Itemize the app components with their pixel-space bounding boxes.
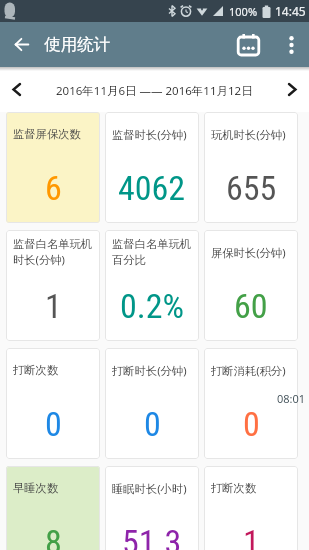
staticText: 监督时长(分钟)	[112, 127, 187, 142]
staticText: 打断时长(分钟)	[112, 363, 187, 378]
staticText: 51.3	[122, 522, 182, 550]
staticText: 1	[243, 522, 260, 550]
staticText: 14:45	[275, 3, 306, 19]
staticText: 100%	[229, 4, 258, 19]
staticText: 4062	[118, 168, 186, 208]
staticText: 0	[144, 404, 161, 444]
staticText: 睡眠时长(小时)	[112, 481, 187, 496]
staticText: 8	[45, 522, 62, 550]
staticText: 打断次数	[211, 481, 257, 495]
staticText: 监督屏保次数	[13, 127, 81, 141]
staticText: 打断消耗(积分)	[211, 363, 286, 378]
staticText: 6	[45, 168, 62, 208]
staticText: 60	[234, 286, 268, 326]
staticText: 监督白名单玩机 时长(分钟)	[13, 237, 93, 268]
staticText: 2016年11月6日 —— 2016年11月12日	[56, 83, 253, 99]
staticText: 08:01	[277, 391, 306, 406]
staticText: 打断次数	[13, 363, 59, 377]
staticText: 655	[226, 168, 277, 208]
staticText: 屏保时长(分钟)	[211, 245, 286, 260]
staticText: 1	[45, 286, 62, 326]
staticText: 使用统计	[44, 34, 110, 55]
staticText: 监督白名单玩机 百分比	[112, 237, 192, 267]
staticText: 0	[45, 404, 62, 444]
staticText: 玩机时长(分钟)	[211, 127, 286, 142]
staticText: 早睡次数	[13, 481, 59, 495]
staticText: 0	[243, 404, 260, 444]
staticText: 0.2%	[120, 286, 185, 326]
